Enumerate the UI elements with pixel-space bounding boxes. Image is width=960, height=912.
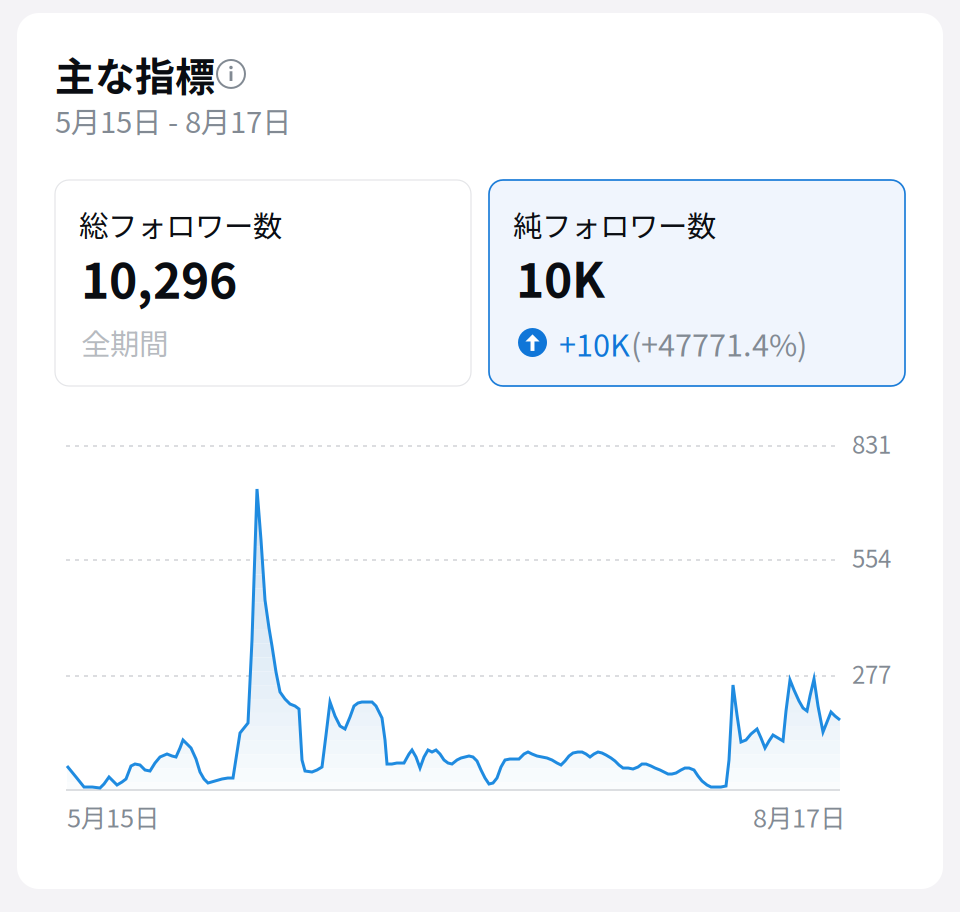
staticText: 5月15日: [67, 798, 159, 835]
staticText: 8月17日: [753, 798, 845, 835]
staticText: 全期間: [81, 321, 168, 363]
staticText: +10K: [559, 321, 630, 365]
staticText: 総フォロワー数: [79, 203, 282, 245]
button[interactable]: 純フォロワー数: [489, 180, 905, 386]
staticText: (+47771.4%): [631, 321, 807, 365]
staticText: 主な指標: [55, 45, 215, 103]
staticText: 554: [852, 540, 891, 575]
staticText: 277: [852, 656, 891, 691]
staticText: 5月15日 - 8月17日: [55, 99, 291, 141]
staticText: 831: [852, 426, 891, 461]
staticText: 10,296: [81, 243, 237, 312]
button[interactable]: 指標について: [216, 59, 246, 89]
staticText: 10K: [516, 242, 605, 311]
staticText: 純フォロワー数: [513, 203, 716, 245]
button[interactable]: 総フォロワー数: [55, 180, 471, 386]
